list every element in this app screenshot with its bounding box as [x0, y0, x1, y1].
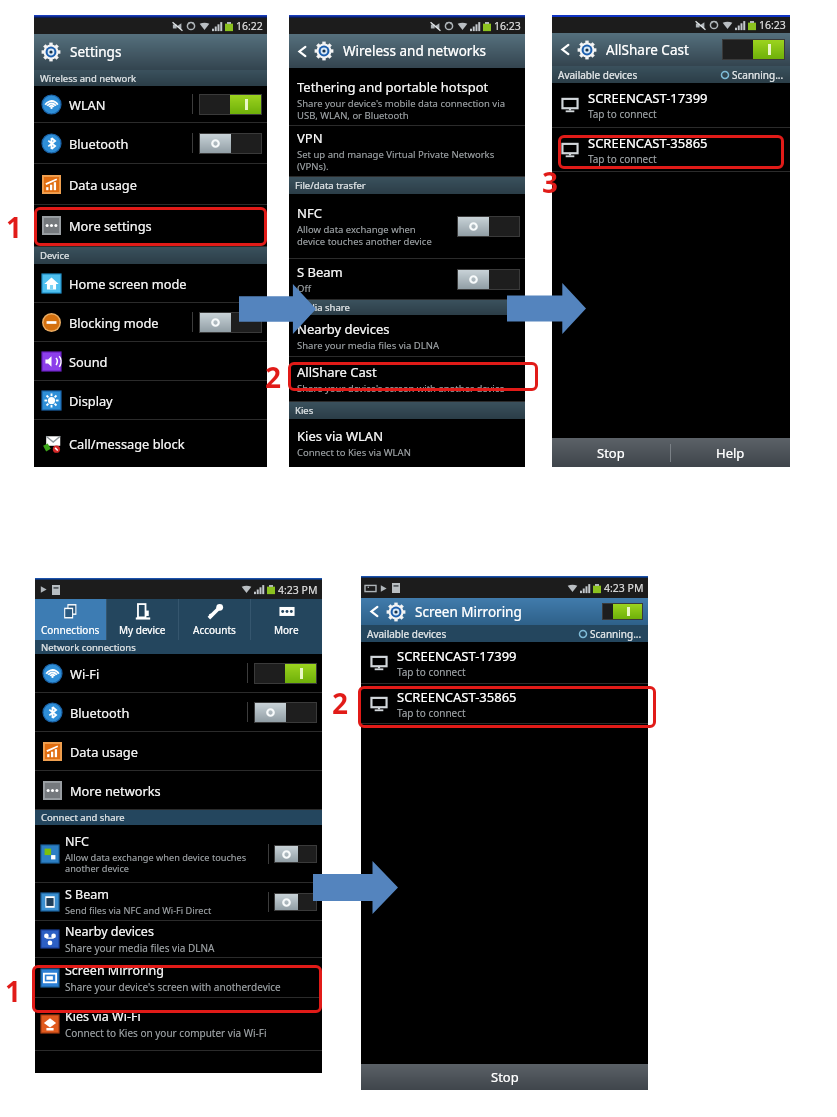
button[interactable]: Nearby devices	[35, 921, 322, 957]
staticText: Connections	[41, 623, 100, 637]
staticText: More networks	[70, 782, 317, 799]
staticText: 16:22	[236, 19, 263, 33]
button[interactable]: Call/message block	[34, 420, 267, 467]
staticText: Scanning...	[732, 68, 784, 82]
button[interactable]: S Beam	[289, 259, 525, 299]
staticText: Allow data exchange when device touches …	[297, 223, 432, 248]
button[interactable]: SCREENCAST-35865	[552, 128, 790, 171]
button[interactable]: Help	[671, 438, 790, 467]
staticText: SCREENCAST-17399	[397, 647, 517, 665]
staticText: Allow data exchange when device touches …	[65, 851, 247, 875]
staticText: Connect and share	[41, 811, 125, 824]
staticText: Blocking mode	[69, 314, 192, 331]
staticText: 16:23	[759, 18, 786, 32]
button[interactable]: Back	[289, 34, 525, 68]
button[interactable]: More	[251, 599, 322, 640]
button[interactable]: VPN	[289, 126, 525, 176]
button[interactable]: Off	[274, 845, 317, 863]
button[interactable]: On	[254, 663, 317, 684]
staticText: Wi-Fi	[70, 665, 247, 682]
staticText: Tap to connect	[397, 706, 466, 720]
staticText: Available devices	[558, 68, 721, 82]
button[interactable]: On	[199, 94, 262, 115]
button[interactable]: Settings	[34, 34, 267, 70]
button[interactable]: On	[602, 603, 643, 620]
button[interactable]: SCREENCAST-17399	[552, 83, 790, 127]
staticText: Screen Mirroring	[415, 603, 522, 621]
staticText: Home screen mode	[69, 275, 262, 292]
button[interactable]: WLAN	[34, 86, 267, 122]
button[interactable]: Bluetooth	[35, 693, 322, 731]
staticText: NFC	[297, 204, 322, 222]
staticText: Kies	[295, 404, 314, 417]
staticText: WLAN	[69, 96, 192, 113]
button[interactable]: Wi-Fi	[35, 654, 322, 692]
staticText: Call/message block	[69, 435, 262, 452]
button[interactable]: Off	[199, 312, 262, 333]
button[interactable]: Tethering and portable hotspot	[289, 75, 525, 125]
button[interactable]: NFC	[289, 194, 525, 258]
button[interactable]: Data usage	[34, 164, 267, 204]
button[interactable]: Data usage	[35, 732, 322, 770]
staticText: Scanning...	[590, 627, 642, 641]
staticText: Tap to connect	[588, 107, 657, 121]
button[interactable]: SCREENCAST-35865	[361, 684, 648, 723]
staticText: Media share	[295, 301, 350, 314]
button[interactable]: More networks	[35, 771, 322, 809]
button[interactable]: Screen Mirroring	[35, 958, 322, 997]
button[interactable]: Connections	[35, 599, 106, 640]
button[interactable]: Display	[34, 381, 267, 419]
button[interactable]: Home screen mode	[34, 264, 267, 302]
button[interactable]: On	[722, 39, 785, 60]
staticText: 4:23 PM	[604, 581, 644, 595]
staticText: Stop	[597, 444, 625, 462]
staticText: SCREENCAST-17399	[588, 89, 708, 107]
button[interactable]: Kies via WLAN	[289, 419, 525, 467]
button[interactable]: Stop	[552, 438, 670, 467]
staticText: 2	[332, 684, 349, 722]
staticText: Share your media files via DLNA	[65, 941, 215, 955]
button[interactable]: Back	[552, 33, 790, 66]
staticText: Settings	[70, 43, 122, 61]
staticText: Tethering and portable hotspot	[297, 78, 489, 96]
button[interactable]: Off	[274, 893, 317, 911]
staticText: Screen Mirroring	[65, 962, 164, 979]
staticText: Bluetooth	[69, 135, 192, 152]
button[interactable]: Stop	[361, 1064, 648, 1090]
button[interactable]: My device	[107, 599, 178, 640]
staticText: Network connections	[41, 641, 136, 654]
button[interactable]: AllShare Cast	[289, 357, 525, 401]
staticText: 3	[542, 163, 559, 201]
staticText: 1	[5, 972, 22, 1010]
button[interactable]: Kies via Wi-Fi	[35, 998, 322, 1050]
button[interactable]: NFC	[35, 825, 322, 882]
staticText: Device	[40, 249, 70, 262]
staticText: SCREENCAST-35865	[588, 134, 708, 152]
button[interactable]: More settings	[34, 205, 267, 246]
button[interactable]: Nearby devices	[289, 315, 525, 356]
button[interactable]: Off	[254, 702, 317, 723]
staticText: AllShare Cast	[606, 41, 689, 59]
button[interactable]: Back	[361, 598, 648, 625]
staticText: AllShare Cast	[297, 363, 377, 381]
staticText: Connect to Kies via WLAN	[297, 446, 411, 459]
button[interactable]: Sound	[34, 342, 267, 380]
button[interactable]: Off	[457, 216, 520, 237]
button[interactable]: Blocking mode	[34, 303, 267, 341]
staticText: My device	[119, 623, 166, 637]
button[interactable]: S Beam	[35, 883, 322, 920]
staticText: SCREENCAST-35865	[397, 688, 517, 706]
button[interactable]: Bluetooth	[34, 123, 267, 163]
button[interactable]: Off	[199, 133, 262, 154]
staticText: 1	[6, 208, 23, 246]
staticText: Data usage	[69, 176, 262, 193]
staticText: Bluetooth	[70, 704, 247, 721]
staticText: Tap to connect	[397, 665, 466, 679]
staticText: Available devices	[367, 627, 579, 641]
button[interactable]: Off	[457, 269, 520, 290]
button[interactable]: SCREENCAST-17399	[361, 642, 648, 683]
staticText: File/data trasfer	[295, 179, 366, 192]
button[interactable]: Accounts	[179, 599, 250, 640]
staticText: Connect to Kies on your computer via Wi-…	[65, 1026, 267, 1040]
staticText: NFC	[65, 833, 89, 850]
